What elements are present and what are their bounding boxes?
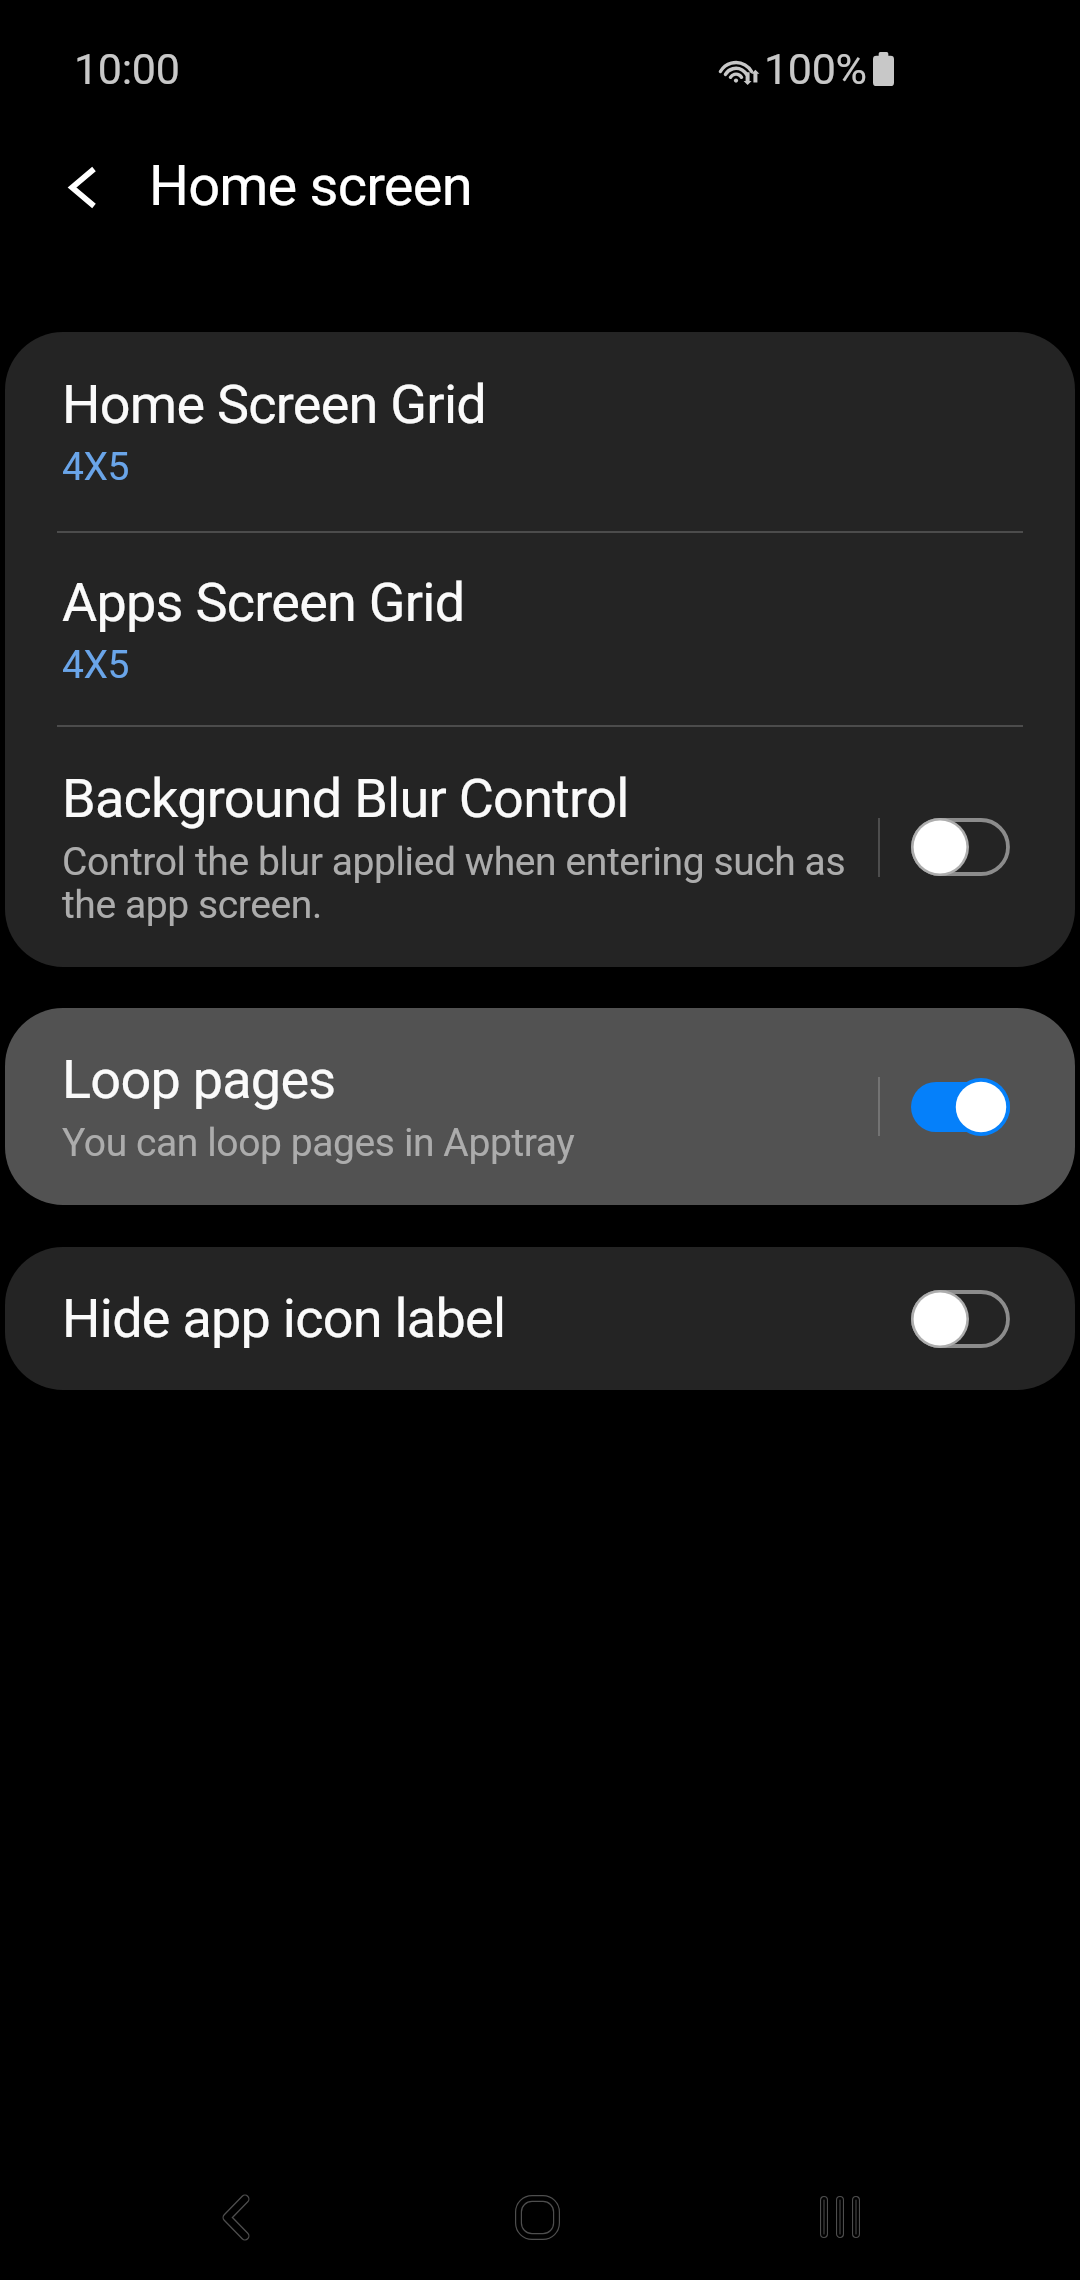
- staticText: Home Screen Grid: [62, 373, 486, 436]
- button[interactable]: Background Blur Control: [5, 727, 1075, 967]
- staticText: Home screen: [149, 153, 472, 219]
- staticText: Loop pages: [62, 1048, 336, 1111]
- button[interactable]: Apps Screen Grid: [5, 533, 1075, 725]
- button[interactable]: Hide app icon label: [5, 1247, 1075, 1390]
- staticText: 100%: [764, 44, 867, 94]
- staticText: You can loop pages in Apptray: [62, 1120, 575, 1166]
- button[interactable]: Back: [176, 2157, 296, 2277]
- button[interactable]: Home: [477, 2157, 597, 2277]
- button[interactable]: Home Screen Grid: [5, 332, 1075, 531]
- staticText: 4X5: [62, 444, 130, 490]
- button[interactable]: Back: [48, 152, 118, 222]
- button[interactable]: Background Blur Control toggle: [911, 818, 1010, 876]
- button[interactable]: Hide app icon label toggle: [911, 1290, 1010, 1348]
- staticText: Apps Screen Grid: [62, 571, 465, 634]
- staticText: Hide app icon label: [62, 1287, 506, 1350]
- button[interactable]: Recent apps: [780, 2157, 900, 2277]
- staticText: Background Blur Control: [62, 767, 629, 830]
- button[interactable]: Loop pages toggle: [911, 1078, 1010, 1136]
- staticText: 10:00: [74, 44, 180, 94]
- staticText: 4X5: [62, 642, 130, 688]
- staticText: Control the blur applied when entering s…: [62, 839, 846, 928]
- button[interactable]: Loop pages: [5, 1008, 1075, 1205]
